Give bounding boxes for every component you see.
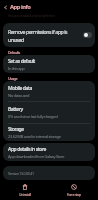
staticText: Usage (8, 76, 18, 81)
button[interactable]: Mobile data (3, 81, 95, 101)
button[interactable]: Remove permissions if app is unused (83, 32, 92, 38)
button[interactable]: Set as default (3, 55, 95, 73)
staticText: 23.62 MB used in internal storage (8, 134, 61, 139)
staticText: Remove permissions if app is (8, 28, 68, 35)
button[interactable]: Storage (3, 124, 95, 141)
button[interactable]: Force stop (49, 184, 98, 197)
staticText: Battery (8, 106, 23, 113)
staticText: In this app (8, 66, 25, 71)
staticText: this app is not available in Samsung Mem… (8, 14, 55, 18)
staticText: Version 13.0.00.41 (8, 171, 34, 176)
staticText: Storage (8, 126, 24, 133)
button[interactable]: Uninstall (0, 184, 49, 197)
button[interactable]: App details in store (3, 143, 95, 161)
staticText: Force stop (67, 192, 81, 197)
button[interactable]: Navigate up (0, 0, 10, 14)
staticText: Mobile data (8, 85, 32, 92)
staticText: App downloaded from Galaxy Store (8, 154, 65, 159)
staticText: 0% used since last fully charged (8, 114, 58, 119)
button[interactable]: Remove permissions if app is (3, 23, 95, 47)
button[interactable]: Version 13.0.00.41 (3, 166, 95, 180)
staticText: Set as default (8, 58, 35, 65)
staticText: unused (8, 36, 24, 43)
button[interactable]: Battery (3, 102, 95, 123)
staticText: Uninstall (19, 192, 31, 197)
staticText: No data used (8, 93, 30, 98)
staticText: Defaults (8, 50, 21, 55)
staticText: App details in store (8, 146, 47, 153)
staticText: App info (10, 3, 31, 11)
